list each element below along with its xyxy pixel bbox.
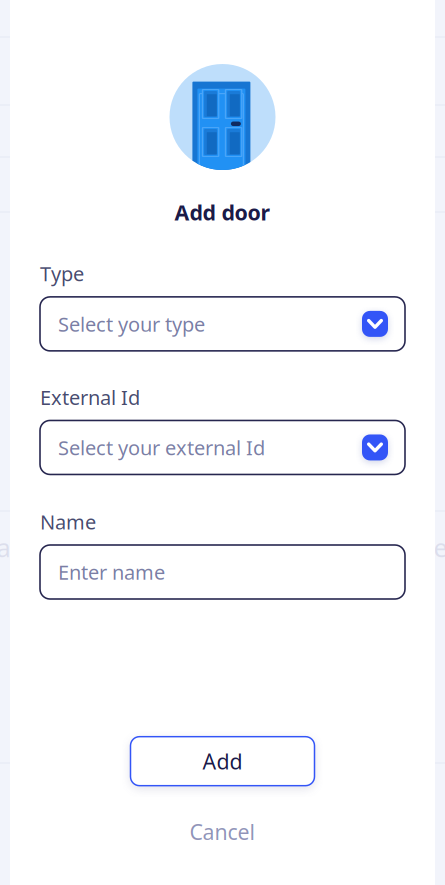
button[interactable]: Add xyxy=(130,737,314,786)
staticText: a xyxy=(0,531,10,564)
staticText: External Id xyxy=(40,384,140,410)
staticText: Type xyxy=(40,260,84,287)
staticText: Select your external Id xyxy=(58,434,265,461)
staticText: e xyxy=(433,531,445,564)
staticText: Name xyxy=(40,508,96,535)
staticText: Add xyxy=(202,747,242,775)
button[interactable]: Select external Id xyxy=(362,434,388,460)
button[interactable]: Select type xyxy=(362,311,388,337)
staticText: Select your type xyxy=(58,311,205,337)
button[interactable]: Cancel xyxy=(189,818,255,846)
staticText: Cancel xyxy=(189,818,255,846)
staticText: Enter name xyxy=(58,559,165,585)
staticText: Add door xyxy=(174,198,270,226)
